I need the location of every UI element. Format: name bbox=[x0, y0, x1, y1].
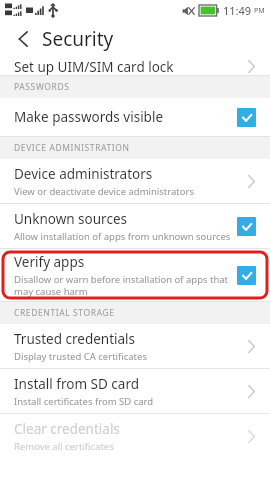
staticText: Unknown sources bbox=[14, 210, 127, 228]
staticText: PM bbox=[254, 6, 265, 16]
button[interactable]: Toggle checkbox bbox=[237, 108, 256, 127]
button[interactable]: Toggle checkbox bbox=[237, 217, 256, 236]
staticText: Set up UIM/SIM card lock bbox=[14, 58, 247, 75]
button[interactable]: Install from SD card bbox=[0, 369, 270, 413]
staticText: Security bbox=[42, 26, 114, 52]
staticText: CREDENTIAL STORAGE bbox=[14, 307, 115, 319]
staticText: Allow installation of apps from unknown … bbox=[14, 230, 231, 243]
button[interactable]: Clear credentials bbox=[0, 414, 270, 458]
staticText: Device administrators bbox=[14, 165, 153, 183]
button[interactable]: Verify apps bbox=[3, 251, 267, 299]
staticText: View or deactivate device administrators bbox=[14, 185, 194, 198]
button[interactable]: Trusted credentials bbox=[0, 324, 270, 368]
staticText: DEVICE ADMINISTRATION bbox=[14, 142, 130, 154]
button[interactable]: Unknown sources bbox=[0, 204, 270, 248]
staticText: Make passwords visible bbox=[14, 108, 164, 126]
staticText: Verify apps bbox=[14, 253, 85, 271]
button[interactable]: Set up UIM/SIM card lock bbox=[0, 58, 270, 75]
staticText: Disallow or warn before installation of … bbox=[14, 273, 237, 298]
staticText: Install from SD card bbox=[14, 375, 139, 393]
button[interactable]: Make passwords visible bbox=[0, 98, 270, 136]
staticText: Remove all certificates bbox=[14, 440, 114, 453]
staticText: PASSWORDS bbox=[14, 81, 70, 93]
staticText: Display trusted CA certificates bbox=[14, 350, 147, 363]
button[interactable]: Toggle checkbox bbox=[237, 266, 256, 285]
staticText: 11:49 bbox=[223, 3, 252, 18]
button[interactable]: Device administrators bbox=[0, 159, 270, 203]
staticText: Install certificates from SD card bbox=[14, 395, 154, 408]
staticText: Clear credentials bbox=[14, 420, 120, 438]
button[interactable]: Back bbox=[8, 24, 38, 54]
staticText: Trusted credentials bbox=[14, 330, 136, 348]
